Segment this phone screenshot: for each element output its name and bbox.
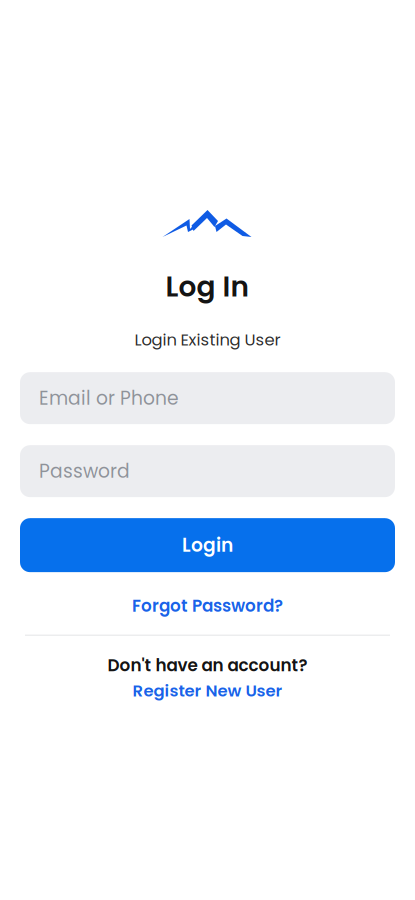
staticText: Log In: [165, 267, 249, 306]
staticText: Login Existing User: [134, 328, 280, 351]
staticText: Email or Phone: [39, 385, 179, 411]
button[interactable]: Login: [20, 518, 395, 572]
staticText: Forgot Password?: [132, 594, 283, 618]
staticText: Password: [39, 458, 130, 484]
staticText: Don't have an account?: [107, 654, 307, 677]
staticText: Login: [182, 532, 233, 558]
staticText: Register New User: [132, 679, 282, 702]
button[interactable]: Register New User: [120, 677, 294, 704]
button[interactable]: Forgot Password?: [120, 591, 295, 621]
